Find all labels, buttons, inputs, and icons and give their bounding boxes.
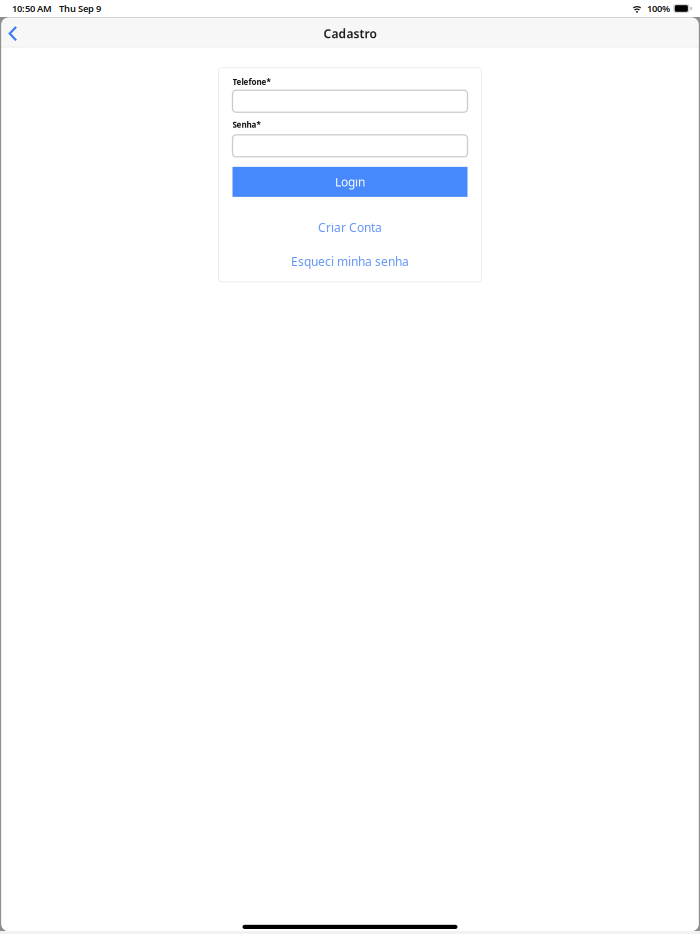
staticText: Thu Sep 9 <box>59 2 101 15</box>
staticText: Criar Conta <box>318 219 382 235</box>
button[interactable]: Login <box>232 167 467 197</box>
staticText: Cadastro <box>323 26 376 41</box>
button[interactable]: Back <box>1 18 24 47</box>
staticText: 10:50 AM <box>12 2 52 15</box>
staticText: Login <box>335 174 365 190</box>
button[interactable]: Esqueci minha senha <box>232 253 467 270</box>
staticText: 100% <box>647 2 670 15</box>
staticText: Senha* <box>232 119 260 130</box>
button[interactable]: Criar Conta <box>232 219 467 236</box>
staticText: Telefone* <box>232 77 270 87</box>
staticText: Esqueci minha senha <box>291 253 409 269</box>
